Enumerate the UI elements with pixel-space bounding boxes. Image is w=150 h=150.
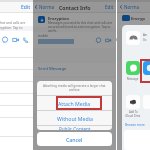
button[interactable]: Chat <box>1 36 9 44</box>
staticText: secured with end-to-end encryption. Tap … <box>48 25 111 29</box>
staticText: Public Content <box>59 126 91 130</box>
staticText: Edit <box>105 4 114 10</box>
staticText: Norma <box>39 4 55 10</box>
button[interactable]: Browse more <box>125 123 145 127</box>
button[interactable]: Public Content <box>37 126 112 130</box>
staticText: Encryp <box>131 16 145 22</box>
button[interactable]: Cancel <box>37 132 112 146</box>
button[interactable]: Edit <box>21 4 31 11</box>
staticText: hat and calls are <box>0 20 26 24</box>
staticText: Norma <box>124 4 140 10</box>
staticText: Contact Info <box>59 4 91 11</box>
staticText: iCloud Drive <box>125 114 141 118</box>
staticText: ryption. Tap to <box>0 25 23 29</box>
button[interactable]: Edit <box>105 4 114 10</box>
staticText: Add To <box>129 110 138 114</box>
staticText: Attaching media will generate a larger c… <box>43 84 106 88</box>
button[interactable]: Without Media <box>37 111 112 125</box>
staticText: Attach Media <box>58 100 91 107</box>
staticText: Message <box>127 77 139 81</box>
staticText: Bo <box>143 38 147 42</box>
staticText: An <box>143 33 147 37</box>
staticText: Encryption <box>48 16 69 21</box>
staticText: mobile <box>38 34 49 38</box>
button[interactable]: Send Message <box>38 66 67 72</box>
staticText: archive. <box>69 88 81 92</box>
staticText: Cancel <box>66 136 83 143</box>
button[interactable]: Call <box>22 36 30 44</box>
button[interactable]: Norma <box>119 4 140 10</box>
staticText: Messages you send to this chat and calls… <box>48 21 113 25</box>
staticText: Without Media <box>57 115 93 122</box>
staticText: Edit <box>21 4 31 11</box>
button[interactable]: Share to app <box>143 61 150 75</box>
button[interactable]: Norma <box>34 4 55 10</box>
button[interactable]: Video call <box>12 36 20 44</box>
button[interactable]: Attach Media <box>37 96 112 110</box>
staticText: verify. <box>48 29 57 33</box>
button[interactable]: Add To iCloud Drive <box>126 95 140 109</box>
button[interactable]: Message <box>126 61 140 75</box>
